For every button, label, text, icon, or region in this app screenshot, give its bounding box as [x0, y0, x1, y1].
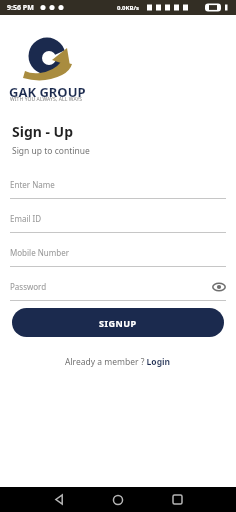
staticText: Email ID	[10, 213, 42, 224]
button[interactable]: Email ID	[10, 213, 226, 247]
staticText: Sign up to continue	[12, 145, 90, 157]
staticText: SIGNUP	[99, 317, 137, 329]
staticText: Enter Name	[10, 179, 55, 190]
staticText: GAK GROUP	[9, 83, 86, 101]
staticText: 9:56 PM	[7, 3, 34, 13]
staticText: Password	[10, 281, 47, 292]
button[interactable]: Password	[10, 281, 226, 315]
staticText: WITH YOU ALWAYS, ALL WAYS	[10, 96, 83, 103]
staticText: Sign - Up	[12, 122, 74, 141]
button[interactable]: Enter Name	[10, 179, 226, 213]
button[interactable]	[165, 487, 189, 512]
staticText: Mobile Number	[10, 247, 69, 258]
button[interactable]: Mobile Number	[10, 247, 226, 281]
staticText: 0.0KB/s	[117, 4, 140, 12]
button[interactable]: SIGNUP	[12, 308, 224, 337]
button[interactable]	[106, 487, 130, 512]
button[interactable]	[47, 487, 71, 512]
button[interactable]: Already a member ? Login	[65, 356, 171, 368]
